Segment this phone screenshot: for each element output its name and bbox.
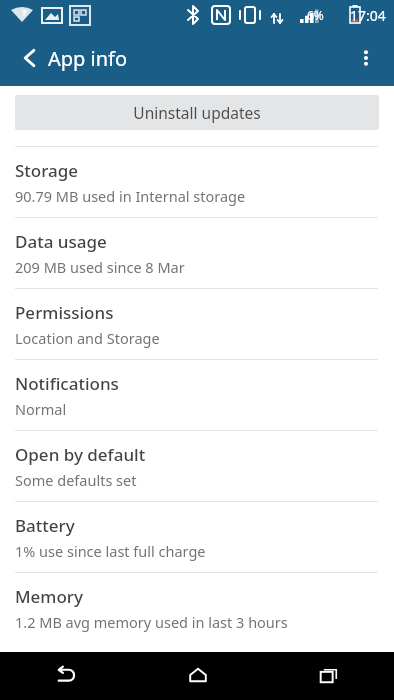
staticText: 209 MB used since 8 Mar [15,257,185,277]
button[interactable]: Battery [0,502,394,572]
staticText: ? [22,6,27,18]
staticText: Open by default [15,443,146,466]
staticText: 1% use since last full charge [15,541,206,561]
button[interactable]: Open by default [0,431,394,501]
button[interactable]: Uninstall updates [15,95,379,130]
button[interactable]: Back [6,34,54,82]
button[interactable]: Home [132,652,263,700]
staticText: 17:04 [350,6,386,25]
button[interactable]: Permissions [0,289,394,359]
staticText: Storage [15,159,79,182]
staticText: Uninstall updates [133,102,261,123]
staticText: Some defaults set [15,470,137,490]
staticText: Memory [15,585,84,608]
button[interactable]: Data usage [0,218,394,288]
button[interactable]: Storage [0,147,394,217]
staticText: Battery [15,514,75,537]
staticText: Notifications [15,372,119,395]
staticText: Permissions [15,301,114,324]
button[interactable]: More options [342,34,390,82]
staticText: 6% [307,7,324,23]
button[interactable]: Memory [0,573,394,643]
button[interactable]: Notifications [0,360,394,430]
button[interactable]: Back [0,652,132,700]
button[interactable]: Recent apps [263,652,394,700]
staticText: App info [48,45,128,72]
staticText: 1.2 MB avg memory used in last 3 hours [15,612,288,632]
staticText: Data usage [15,230,107,253]
staticText: Normal [15,399,67,419]
staticText: 90.79 MB used in Internal storage [15,186,246,206]
staticText: Location and Storage [15,328,160,348]
